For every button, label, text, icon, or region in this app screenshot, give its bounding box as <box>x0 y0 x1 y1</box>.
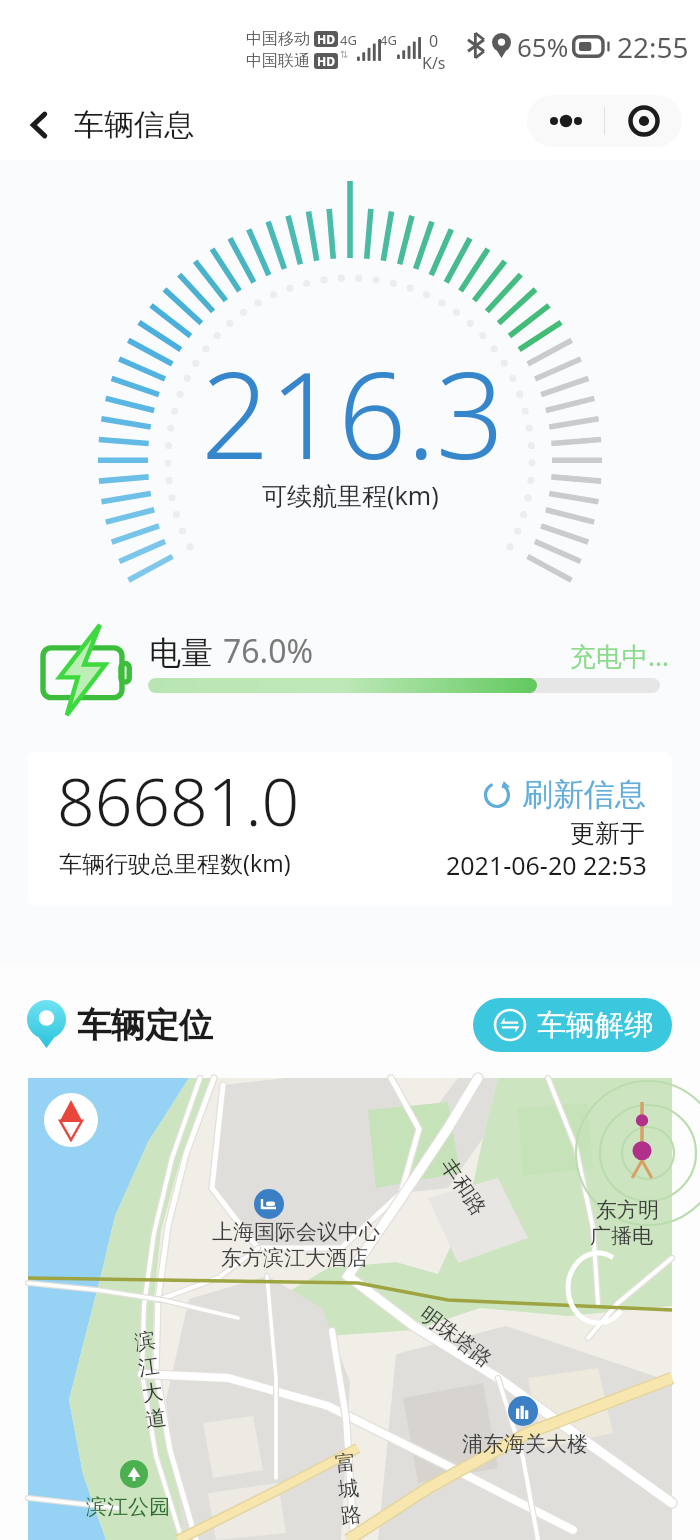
staticText: 中国联通 <box>246 51 310 71</box>
staticText: 城 <box>337 1475 360 1503</box>
staticText: 216.3 <box>201 331 505 494</box>
staticText: 大 <box>140 1378 164 1407</box>
staticText: 车辆解绑 <box>537 1007 653 1044</box>
button[interactable] <box>28 752 672 906</box>
staticText: 富 <box>334 1449 358 1477</box>
staticText: 22:55 <box>617 28 689 66</box>
button[interactable]: Back <box>14 100 64 150</box>
staticText: 丰和路 <box>435 1154 492 1220</box>
staticText: HD <box>317 53 335 69</box>
staticText: 充电中... <box>570 638 669 674</box>
button[interactable]: 刷新信息 <box>483 775 646 814</box>
staticText: 4G <box>380 31 397 49</box>
staticText: K/s <box>422 52 446 74</box>
staticText: 76.0% <box>223 629 314 673</box>
staticText: 车辆定位 <box>77 1004 213 1047</box>
staticText: 明珠塔路 <box>415 1301 497 1373</box>
button[interactable]: More options <box>527 95 604 147</box>
staticText: 电量 <box>149 633 213 673</box>
staticText: 86681.0 <box>57 755 300 845</box>
staticText: 滨 <box>133 1327 157 1356</box>
staticText: 广播电 <box>590 1223 653 1249</box>
button[interactable]: Close <box>605 95 682 147</box>
staticText: 4G <box>340 31 357 49</box>
staticText: 道 <box>144 1404 168 1433</box>
staticText: 车辆信息 <box>74 106 194 144</box>
button[interactable]: 车辆解绑 <box>473 998 672 1052</box>
staticText: 东方明 <box>596 1197 659 1223</box>
staticText: HD <box>317 31 335 47</box>
staticText: 东方滨江大酒店 <box>221 1245 368 1271</box>
button[interactable]: 上海国际会议中心 <box>28 1078 672 1540</box>
staticText: 65% <box>517 29 569 64</box>
staticText: 浦东海关大楼 <box>462 1431 588 1457</box>
staticText: 中国移动 <box>246 29 310 49</box>
staticText: 滨江公园 <box>86 1494 170 1520</box>
button[interactable]: Compass <box>44 1093 98 1147</box>
staticText: 2021-06-20 22:53 <box>446 848 647 882</box>
staticText: 更新于 <box>570 818 645 849</box>
staticText: 刷新信息 <box>522 775 646 814</box>
staticText: 0 <box>429 30 439 52</box>
staticText: 路 <box>339 1501 363 1529</box>
staticText: ⇅ <box>340 49 349 61</box>
staticText: 江 <box>136 1353 161 1381</box>
staticText: 上海国际会议中心 <box>212 1219 380 1245</box>
staticText: 车辆行驶总里程数(km) <box>59 847 291 878</box>
staticText: 可续航里程(km) <box>262 478 439 512</box>
